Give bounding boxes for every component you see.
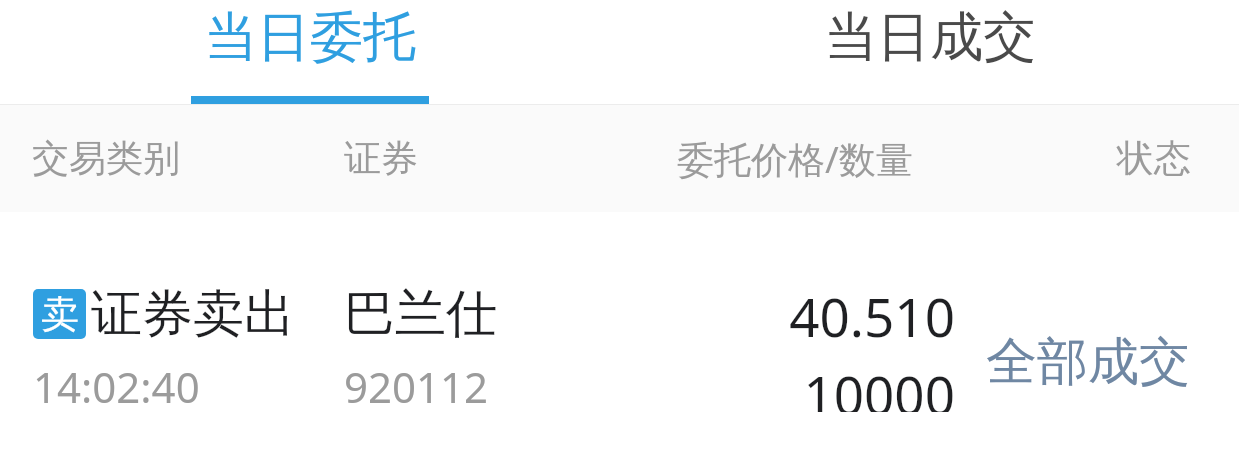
button[interactable]: 卖 (0, 212, 1239, 412)
staticText: 全部成交 (986, 330, 1190, 394)
button[interactable]: 当日委托 (0, 0, 620, 104)
staticText: 状态 (1117, 135, 1191, 182)
button[interactable]: 当日成交 (620, 0, 1239, 104)
staticText: 当日委托 (204, 4, 416, 71)
staticText: 交易类别 (32, 135, 180, 182)
staticText: 巴兰仕 (344, 282, 497, 346)
staticText: 当日成交 (824, 4, 1036, 71)
staticText: 920112 (344, 358, 489, 412)
staticText: 14:02:40 (33, 358, 200, 412)
staticText: 证券 (344, 135, 418, 182)
staticText: 委托价格/数量 (677, 133, 913, 184)
staticText: 证券卖出 (91, 282, 295, 346)
staticText: 10000 (803, 358, 955, 412)
staticText: 40.510 (789, 280, 955, 352)
staticText: 卖 (41, 290, 79, 338)
